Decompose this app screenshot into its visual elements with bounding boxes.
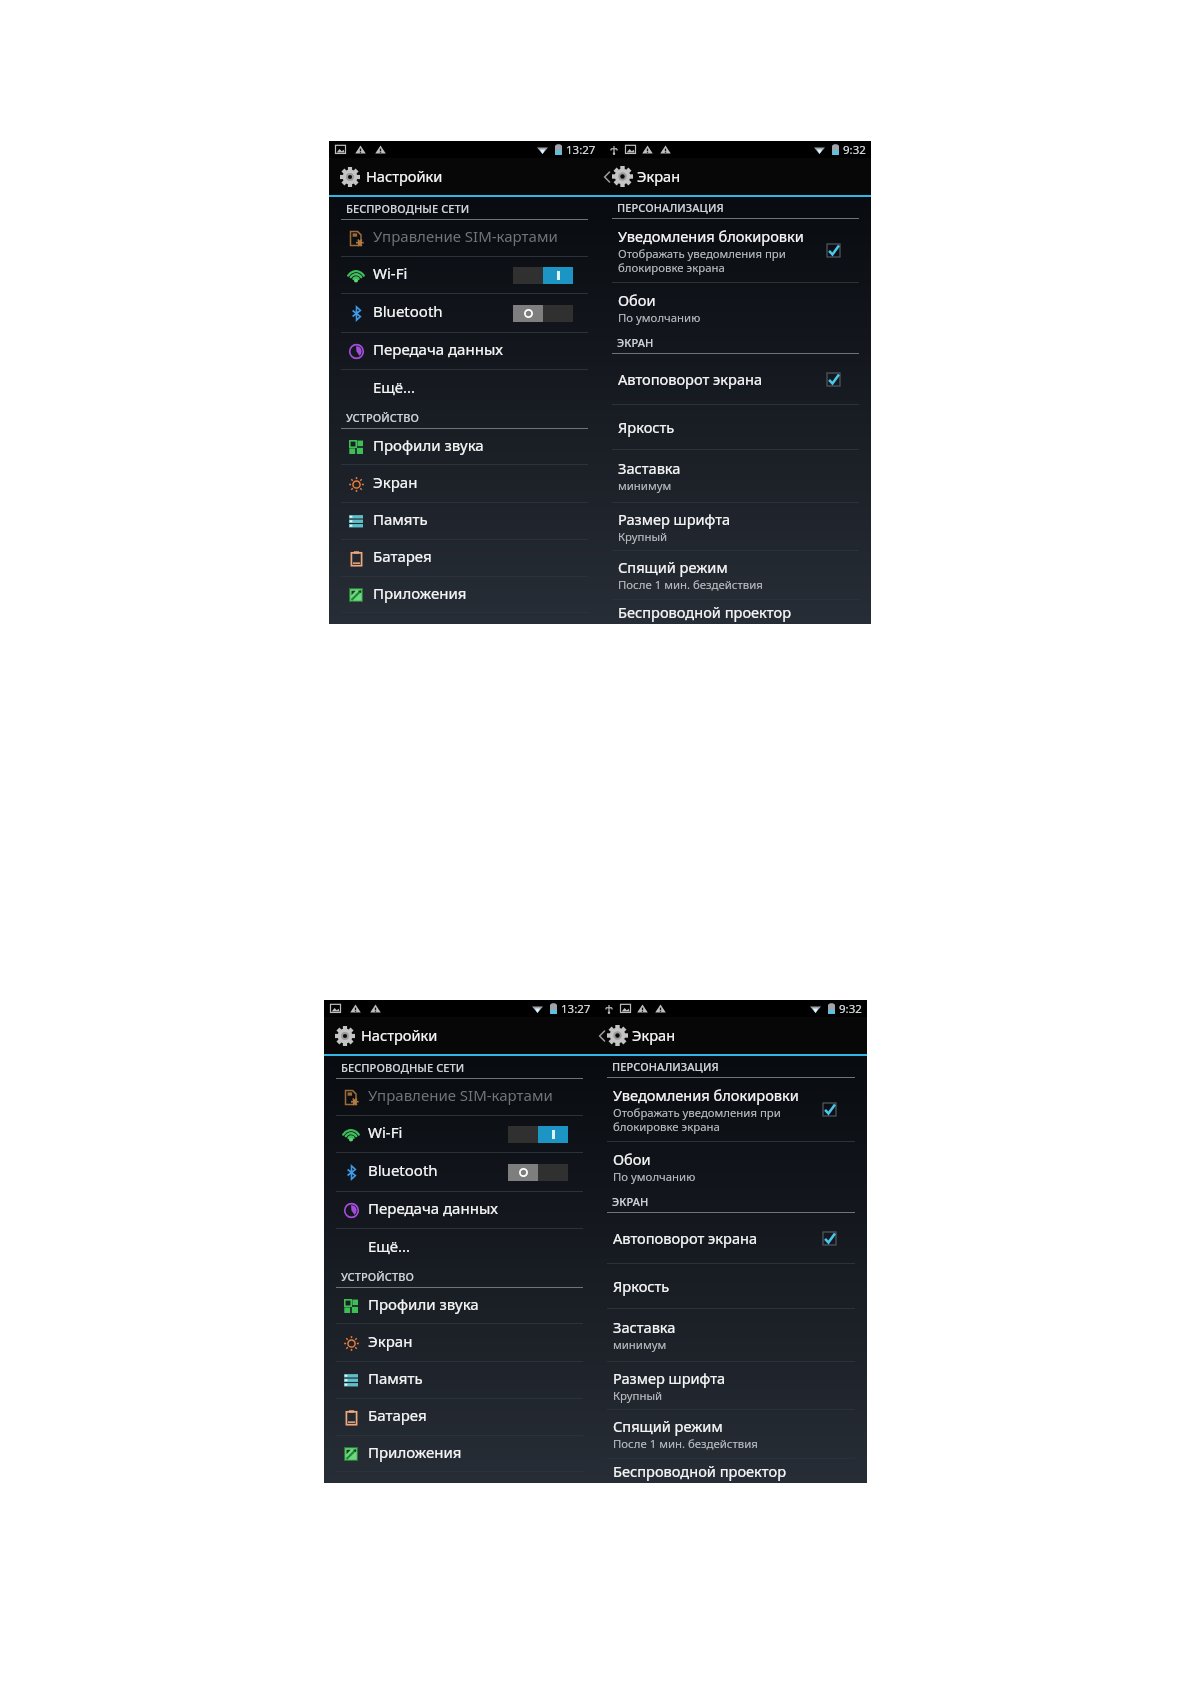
button[interactable]: Заставка	[600, 450, 871, 502]
button[interactable]: Уведомления блокировки	[600, 219, 871, 282]
staticText: ПЕРСОНАЛИЗАЦИЯ	[617, 200, 724, 215]
staticText: Управление SIM-картами	[368, 1085, 553, 1105]
button[interactable]: Яркость	[600, 405, 871, 449]
button[interactable]: Назад	[600, 158, 871, 195]
staticText: Уведомления блокировки	[613, 1085, 799, 1105]
staticText: Wi-Fi	[368, 1122, 403, 1142]
staticText: После 1 мин. бездействия	[618, 577, 763, 593]
staticText: 9:32	[839, 1001, 862, 1017]
button[interactable]: Профили звука	[329, 429, 600, 464]
staticText: БЕСПРОВОДНЫЕ СЕТИ	[341, 1060, 465, 1075]
button[interactable]: Батарея	[324, 1399, 595, 1435]
staticText: минимум	[618, 478, 672, 494]
staticText: ЭКРАН	[612, 1194, 649, 1209]
button[interactable]: Уведомления блокировки	[595, 1078, 867, 1141]
staticText: Экран	[368, 1331, 413, 1351]
button[interactable]: Назад	[595, 1017, 867, 1054]
button[interactable]: Передача данных	[324, 1192, 595, 1228]
staticText: ПЕРСОНАЛИЗАЦИЯ	[612, 1059, 719, 1074]
staticText: Передача данных	[368, 1198, 498, 1218]
staticText: УСТРОЙСТВО	[346, 410, 420, 425]
staticText: Спящий режим	[613, 1416, 723, 1436]
button[interactable]: Экран	[324, 1324, 595, 1361]
button[interactable]: Размер шрифта	[595, 1362, 867, 1409]
staticText: Беспроводной проектор	[618, 602, 792, 622]
button[interactable]: Bluetooth	[329, 294, 600, 332]
button[interactable]: Заставка	[595, 1309, 867, 1361]
button[interactable]: Автоповорот экрана	[595, 1213, 867, 1263]
button[interactable]: Ещё...	[329, 370, 600, 407]
button[interactable]: Приложения	[329, 577, 600, 612]
button[interactable]: Профили звука	[324, 1288, 595, 1323]
button[interactable]: Управление SIM-картами	[329, 220, 600, 256]
staticText: Яркость	[613, 1276, 670, 1296]
button[interactable]: Яркость	[595, 1264, 867, 1308]
staticText: Размер шрифта	[613, 1368, 726, 1388]
staticText: Экран	[373, 472, 418, 492]
staticText: Bluetooth	[368, 1160, 438, 1180]
button[interactable]	[513, 267, 573, 284]
button[interactable]: Флажок	[823, 1103, 836, 1116]
other: Назад	[604, 171, 610, 183]
staticText: Обои	[613, 1149, 651, 1169]
button[interactable]: Настройки	[324, 1017, 595, 1054]
button[interactable]: Память	[329, 503, 600, 539]
staticText: Память	[373, 509, 428, 529]
staticText: Заставка	[618, 458, 681, 478]
staticText: УСТРОЙСТВО	[341, 1269, 415, 1284]
staticText: минимум	[613, 1337, 667, 1353]
button[interactable]: Размер шрифта	[600, 503, 871, 550]
staticText: Батарея	[373, 546, 432, 566]
staticText: Отображать уведомления при блокировке эк…	[613, 1105, 781, 1134]
staticText: 13:27	[561, 1001, 591, 1017]
button[interactable]: Управление SIM-картами	[324, 1079, 595, 1115]
button[interactable]: Автоповорот экрана	[600, 354, 871, 404]
button[interactable]: Wi-Fi	[324, 1116, 595, 1152]
staticText: Уведомления блокировки	[618, 226, 804, 246]
staticText: Приложения	[368, 1442, 462, 1462]
staticText: БЕСПРОВОДНЫЕ СЕТИ	[346, 201, 470, 216]
staticText: Настройки	[361, 1025, 438, 1045]
staticText: Передача данных	[373, 339, 503, 359]
button[interactable]: Батарея	[329, 540, 600, 576]
button[interactable]: Обои	[600, 283, 871, 332]
staticText: Беспроводной проектор	[613, 1461, 787, 1481]
staticText: Яркость	[618, 417, 675, 437]
staticText: Wi-Fi	[373, 263, 408, 283]
staticText: Автоповорот экрана	[618, 369, 763, 389]
staticText: Настройки	[366, 166, 443, 186]
staticText: Обои	[618, 290, 656, 310]
button[interactable]	[513, 305, 573, 322]
button[interactable]: Bluetooth	[324, 1153, 595, 1191]
button[interactable]: Экран	[329, 465, 600, 502]
staticText: Управление SIM-картами	[373, 226, 558, 246]
button[interactable]: Память	[324, 1362, 595, 1398]
button[interactable]: Обои	[595, 1142, 867, 1191]
button[interactable]: Флажок	[823, 1232, 836, 1245]
button[interactable]: Передача данных	[329, 333, 600, 369]
staticText: Ещё...	[368, 1236, 411, 1256]
staticText: Приложения	[373, 583, 467, 603]
staticText: Экран	[632, 1025, 676, 1045]
staticText: По умолчанию	[613, 1169, 696, 1185]
button[interactable]: Ещё...	[324, 1229, 595, 1266]
button[interactable]	[508, 1164, 568, 1181]
staticText: По умолчанию	[618, 310, 701, 326]
button[interactable]: Спящий режим	[595, 1410, 867, 1458]
staticText: Заставка	[613, 1317, 676, 1337]
staticText: Bluetooth	[373, 301, 443, 321]
button[interactable]: Спящий режим	[600, 551, 871, 599]
button[interactable]: Флажок	[827, 244, 840, 257]
other: Назад	[599, 1030, 605, 1042]
button[interactable]	[508, 1126, 568, 1143]
staticText: 9:32	[843, 142, 866, 158]
button[interactable]: Настройки	[329, 158, 600, 195]
staticText: Ещё...	[373, 377, 416, 397]
button[interactable]: Беспроводной проектор	[600, 600, 871, 624]
button[interactable]: Wi-Fi	[329, 257, 600, 293]
button[interactable]: Флажок	[827, 373, 840, 386]
button[interactable]: Приложения	[324, 1436, 595, 1471]
staticText: После 1 мин. бездействия	[613, 1436, 758, 1452]
button[interactable]: Беспроводной проектор	[595, 1459, 867, 1483]
staticText: 13:27	[566, 142, 596, 158]
